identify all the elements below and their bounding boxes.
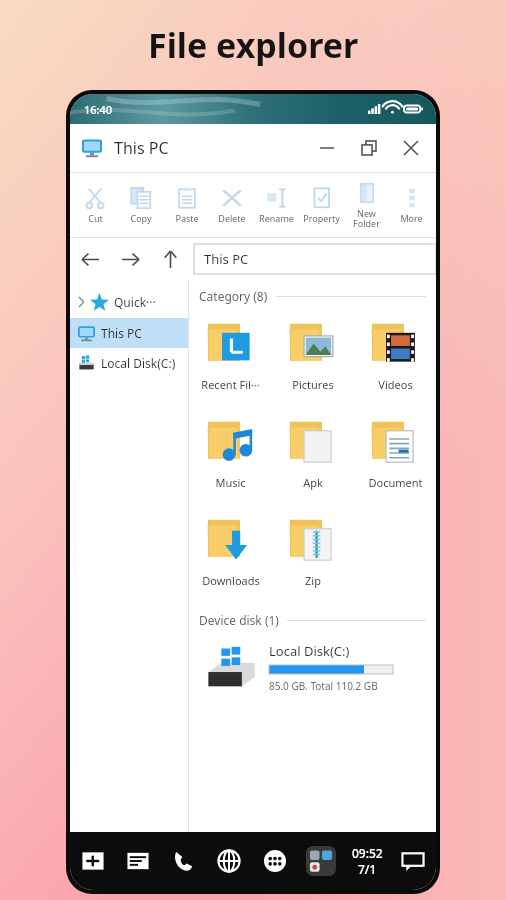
staticText: More [400,212,423,224]
staticText: Category (8) [199,288,268,304]
button[interactable]: Videos [354,308,436,406]
staticText: Cut [88,212,103,224]
staticText: Recent Fil··· [201,377,260,392]
staticText: Delete [218,212,246,224]
button[interactable]: Delete [209,173,254,237]
button[interactable]: Property [299,173,344,237]
button[interactable]: Downloads [189,504,272,602]
button[interactable]: This PC [70,318,188,348]
staticText: File explorer [148,22,359,68]
button[interactable]: Apk [272,406,354,504]
staticText: Document [368,475,423,490]
button[interactable]: Local Disk(C:) [189,636,436,698]
staticText: Local Disk(C:) [269,642,350,660]
staticText: 16:40 [84,102,113,117]
staticText: Apk [303,475,323,490]
staticText: This PC [101,325,142,341]
button[interactable]: Restore [348,127,390,169]
staticText: Device disk (1) [199,612,279,628]
staticText: Downloads [202,573,260,588]
button[interactable]: Copy [118,173,164,237]
button[interactable]: Quick··· [70,286,188,318]
button[interactable]: Minimize [306,127,348,169]
button[interactable]: Phone [160,832,206,890]
button[interactable]: Music [189,406,272,504]
button[interactable]: Paste [164,173,209,237]
staticText: Rename [259,212,294,224]
button[interactable]: Up [150,239,190,279]
staticText: 85.0 GB. Total 110.2 GB [269,679,378,693]
staticText: 7/1 [358,861,377,877]
button[interactable]: Rename [254,173,299,237]
staticText: Paste [175,212,199,224]
staticText: Music [215,475,246,490]
staticText: Local Disk(C:) [101,355,176,371]
button[interactable]: Browser [206,832,252,890]
staticText: This PC [204,250,249,268]
button[interactable]: Back [70,239,110,279]
button[interactable]: New Folder [344,173,389,237]
button[interactable]: Cut [72,173,118,237]
staticText: This PC [114,137,169,159]
button[interactable]: Recent Fil··· [189,308,272,406]
button[interactable]: Messages [115,832,160,890]
button[interactable]: Forward [110,239,150,279]
button[interactable]: This PC [194,244,436,274]
button[interactable]: Local Disk(C:) [70,348,188,378]
staticText: 09:52 [352,845,383,861]
staticText: Zip [305,573,321,588]
button[interactable]: Document [354,406,436,504]
staticText: Quick··· [114,294,156,310]
staticText: Videos [378,377,413,392]
button[interactable]: Apps [252,832,298,890]
button[interactable]: Chat [390,832,436,890]
staticText: Property [303,212,340,224]
button[interactable]: Pictures [272,308,354,406]
button[interactable]: Folder [298,832,344,890]
button[interactable]: Zip [272,504,354,602]
staticText: Copy [130,212,152,224]
button[interactable]: Add [70,832,115,890]
staticText: Pictures [292,377,334,392]
button[interactable]: More [389,173,434,237]
button[interactable]: Close [390,127,432,169]
staticText: New Folder [353,207,380,229]
button[interactable]: Clock [344,832,390,890]
